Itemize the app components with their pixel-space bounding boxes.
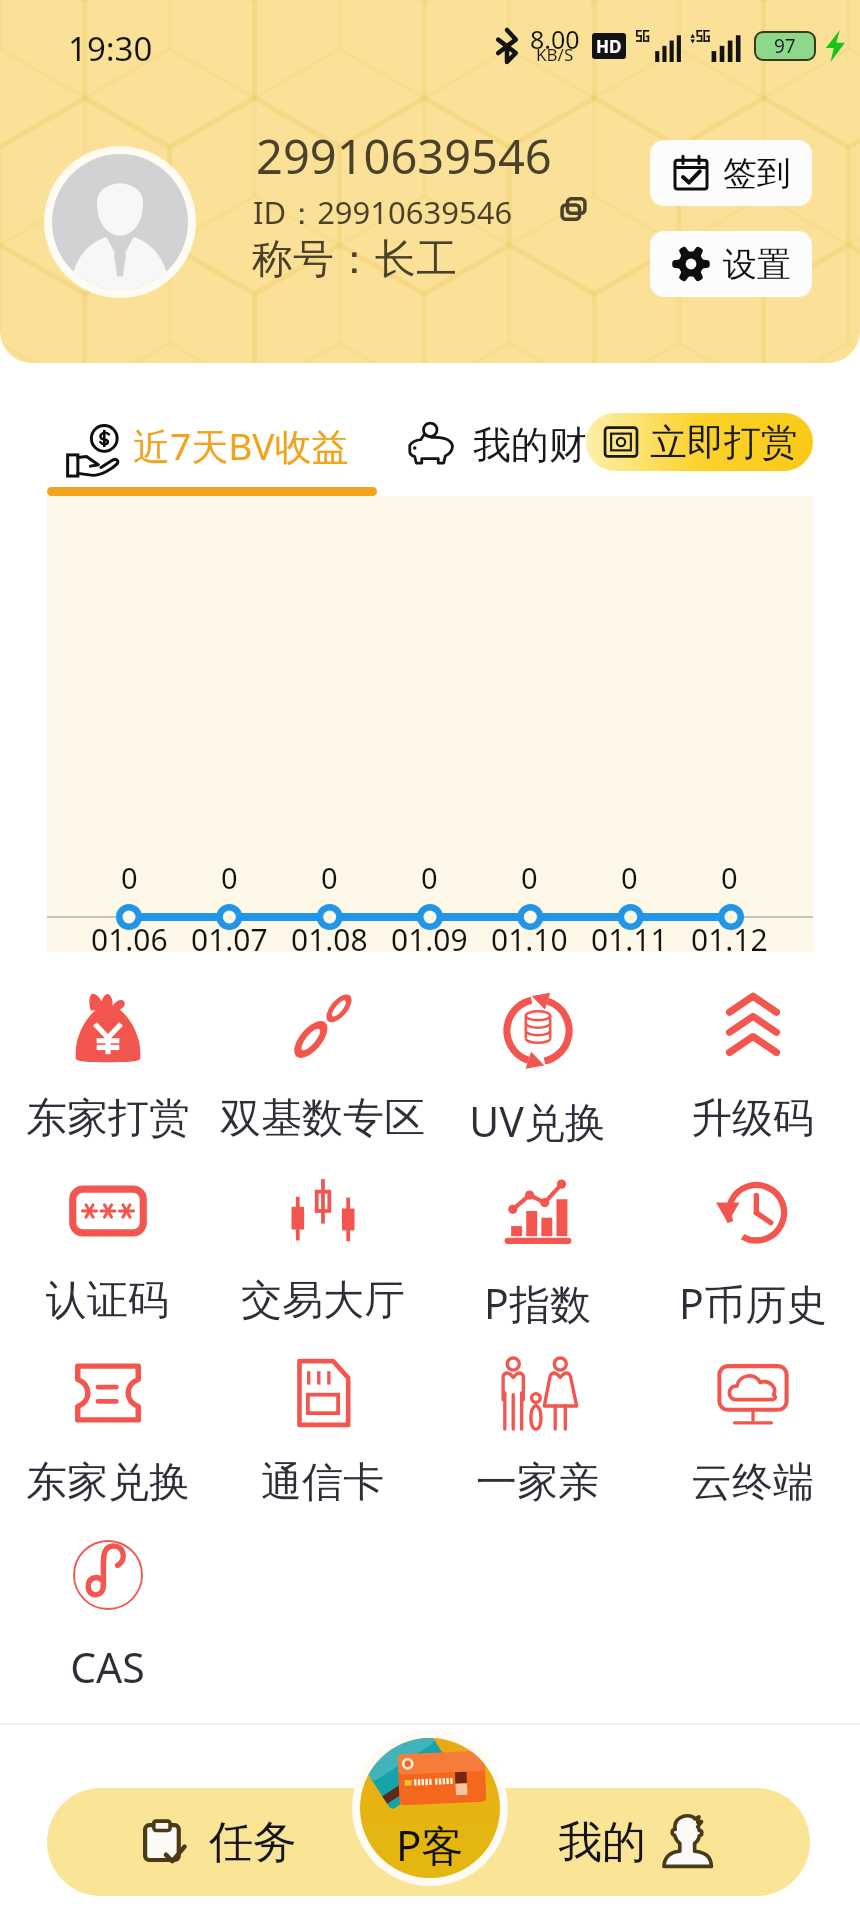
button[interactable]: 任务: [47, 1788, 347, 1896]
staticText: CAS: [70, 1639, 145, 1693]
button[interactable]: 签到: [650, 140, 812, 206]
button[interactable]: 通信卡: [215, 1329, 430, 1511]
button[interactable]: 升级码: [645, 965, 860, 1147]
staticText: 0: [521, 858, 538, 897]
staticText: 8.00: [530, 22, 580, 56]
staticText: 认证码: [46, 1275, 169, 1327]
staticText: 通信卡: [261, 1457, 384, 1509]
button[interactable]: Copy ID: [556, 192, 594, 230]
staticText: P币历史: [679, 1275, 827, 1329]
staticText: 0: [421, 858, 438, 897]
button[interactable]: 双基数专区: [215, 965, 430, 1147]
staticText: 设置: [723, 243, 791, 286]
button[interactable]: UV兑换: [430, 965, 645, 1147]
staticText: 近7天BV收益: [133, 420, 349, 471]
staticText: 任务: [209, 1815, 297, 1870]
button[interactable]: CAS: [0, 1511, 215, 1693]
staticText: HD: [596, 35, 622, 58]
staticText: 云终端: [691, 1457, 814, 1509]
button[interactable]: 认证码: [0, 1147, 215, 1329]
staticText: 01.12: [691, 919, 768, 960]
staticText: 01.09: [391, 919, 468, 960]
staticText: KB/S: [536, 43, 574, 66]
staticText: 0: [721, 858, 738, 897]
staticText: 0: [221, 858, 238, 897]
button[interactable]: P币历史: [645, 1147, 860, 1329]
staticText: P客: [396, 1816, 464, 1873]
button[interactable]: 交易大厅: [215, 1147, 430, 1329]
staticText: 01.08: [291, 919, 368, 960]
staticText: 签到: [723, 152, 791, 195]
button[interactable]: 一家亲: [430, 1329, 645, 1511]
button[interactable]: P客: [360, 1738, 500, 1878]
staticText: 01.06: [91, 919, 168, 960]
staticText: 东家兑换: [26, 1457, 190, 1509]
staticText: 立即打赏: [650, 419, 798, 466]
staticText: 0: [321, 858, 338, 897]
button[interactable]: 设置: [650, 231, 812, 297]
button[interactable]: P指数: [430, 1147, 645, 1329]
staticText: 我的财: [473, 421, 587, 469]
staticText: 0: [121, 858, 138, 897]
button[interactable]: 东家打赏: [0, 965, 215, 1147]
staticText: ID：29910639546: [253, 191, 513, 233]
staticText: UV兑换: [469, 1093, 606, 1147]
staticText: 29910639546: [256, 124, 552, 188]
staticText: 19:30: [68, 26, 153, 71]
staticText: 我的: [558, 1815, 646, 1870]
staticText: 一家亲: [476, 1457, 599, 1509]
staticText: 01.11: [591, 919, 668, 960]
staticText: 0: [621, 858, 638, 897]
staticText: 升级码: [691, 1093, 814, 1145]
staticText: 交易大厅: [241, 1275, 405, 1327]
staticText: 01.10: [491, 919, 568, 960]
button[interactable]: 近7天BV收益: [47, 395, 377, 495]
staticText: 01.07: [191, 919, 268, 960]
staticText: 称号：长工: [252, 234, 457, 286]
button[interactable]: 云终端: [645, 1329, 860, 1511]
staticText: 东家打赏: [26, 1093, 190, 1145]
staticText: 双基数专区: [220, 1093, 425, 1145]
button[interactable]: 我的: [510, 1788, 810, 1896]
staticText: 97: [774, 33, 796, 59]
staticText: P指数: [484, 1275, 591, 1329]
button[interactable]: 我的财: [407, 395, 587, 495]
button[interactable]: 东家兑换: [0, 1329, 215, 1511]
button[interactable]: 立即打赏: [586, 413, 813, 471]
